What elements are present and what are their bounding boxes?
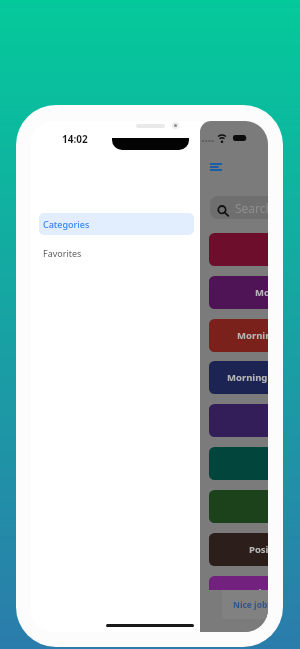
button[interactable]: Categories	[39, 213, 194, 235]
staticText: Favorites	[43, 247, 82, 259]
button[interactable]: Morning	[209, 319, 268, 352]
button[interactable]	[209, 404, 268, 437]
button[interactable]	[209, 233, 268, 266]
button[interactable]: Search	[210, 196, 268, 219]
button[interactable]	[209, 490, 268, 523]
button[interactable]: Open navigation menu	[205, 158, 227, 175]
staticText: Nice job!	[233, 599, 268, 611]
button[interactable]: Morning	[209, 361, 268, 394]
button[interactable]: Morning	[209, 276, 268, 309]
button[interactable]	[209, 447, 268, 480]
staticText: Categories	[43, 218, 90, 230]
staticText: Positive	[249, 543, 268, 556]
button[interactable]: Favorites	[39, 242, 194, 264]
button[interactable]: Positive	[209, 533, 268, 566]
staticText: Evening	[236, 586, 268, 599]
button[interactable]: Evening	[209, 576, 268, 609]
staticText: Morning	[255, 286, 268, 299]
staticText: 14:02	[62, 132, 88, 146]
button[interactable]: Nice job!	[222, 590, 268, 619]
staticText: Morning	[237, 329, 268, 342]
staticText: Morning	[227, 371, 268, 384]
staticText: Search	[235, 200, 268, 216]
